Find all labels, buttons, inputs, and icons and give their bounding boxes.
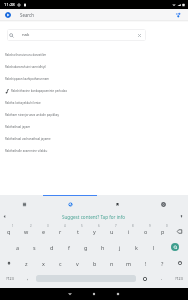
staticText: Rakthathaal jayam <box>5 125 31 129</box>
staticText: z <box>25 260 28 267</box>
staticText: nak <box>22 32 30 38</box>
button[interactable]: n <box>103 255 120 271</box>
button[interactable]: i <box>120 223 137 239</box>
button[interactable]: Rakthathaal jayam <box>0 121 188 133</box>
staticText: t <box>77 228 79 235</box>
button[interactable]: Rakshithavine kankapapaeninte perkalaa <box>0 85 188 97</box>
staticText: Rakshakaranshuini sannidhiyil <box>5 65 47 69</box>
staticText: k <box>135 244 138 251</box>
staticText: Rakshithavine kankapapaeninte perkalaa <box>11 89 67 93</box>
button[interactable]: d <box>43 239 60 255</box>
staticText: 7 <box>115 224 117 228</box>
button[interactable]: . <box>153 271 170 286</box>
button[interactable]: ?123 <box>170 271 188 286</box>
button[interactable]: l <box>145 239 162 255</box>
button[interactable]: t <box>69 223 86 239</box>
button[interactable]: App logo <box>5 12 11 18</box>
staticText: s <box>33 244 36 251</box>
button[interactable]: h <box>94 239 111 255</box>
button[interactable]: w <box>18 223 35 239</box>
staticText: 11:28 <box>4 2 15 8</box>
button[interactable]: e <box>35 223 52 239</box>
button[interactable]: r <box>52 223 69 239</box>
button[interactable] <box>171 223 188 239</box>
staticText: 5 <box>81 224 83 228</box>
button[interactable]: s <box>26 239 43 255</box>
button[interactable]: Back <box>58 288 82 300</box>
button[interactable]: ?123 <box>0 271 19 286</box>
staticText: c <box>59 260 62 267</box>
button[interactable]: Account <box>173 10 183 20</box>
button[interactable]: nak <box>7 29 146 41</box>
button[interactable]: Home <box>82 288 106 300</box>
staticText: v <box>76 260 79 267</box>
staticText: Rakthathalle avannnine vilakku <box>5 149 48 153</box>
staticText: f <box>68 244 70 251</box>
staticText: 2 <box>30 224 32 228</box>
button[interactable]: Google search <box>63 197 77 211</box>
button[interactable]: q <box>0 223 18 239</box>
button[interactable] <box>171 255 188 271</box>
button[interactable]: Emoji <box>136 271 153 286</box>
button[interactable]: Raktha kottayekkuhil eniw <box>0 97 188 109</box>
staticText: Suggest content? Tap for info <box>62 214 126 220</box>
button[interactable] <box>0 255 18 271</box>
button[interactable]: g <box>77 239 94 255</box>
staticText: 0 <box>166 224 168 228</box>
staticText: ?123 <box>175 276 183 281</box>
staticText: q <box>7 228 11 235</box>
button[interactable]: Rakshippaan kazhipatharunnam <box>0 73 188 85</box>
staticText: m <box>126 260 132 267</box>
staticText: g <box>84 244 88 251</box>
button[interactable]: Raktham niranjorueva undalin papikkay <box>0 109 188 121</box>
staticText: ?123 <box>6 276 14 281</box>
button[interactable]: ! <box>137 255 154 271</box>
button[interactable]: a <box>9 239 26 255</box>
button[interactable]: z <box>18 255 35 271</box>
staticText: i <box>128 228 130 235</box>
button[interactable]: y <box>86 223 103 239</box>
button[interactable]: j <box>111 239 128 255</box>
button[interactable]: , <box>19 271 36 286</box>
staticText: b <box>93 260 97 267</box>
button[interactable]: u <box>103 223 120 239</box>
button[interactable]: p <box>154 223 171 239</box>
button[interactable]: k <box>128 239 145 255</box>
staticText: Raktha kottayekkuhil eniw <box>5 101 41 105</box>
button[interactable]: Rakthathalle avannnine vilakku <box>0 145 188 157</box>
button[interactable]: c <box>52 255 69 271</box>
button[interactable]: Stickers <box>110 197 124 211</box>
button[interactable]: b <box>86 255 103 271</box>
staticText: 3 <box>47 224 49 228</box>
button[interactable]: x <box>35 255 52 271</box>
staticText: a <box>16 244 20 251</box>
button[interactable]: Search <box>162 239 188 255</box>
staticText: 6 <box>98 224 100 228</box>
staticText: n <box>110 260 114 267</box>
button[interactable]: Rakshakaranshuini sannidhiyil <box>0 61 188 73</box>
button[interactable]: ? <box>154 255 171 271</box>
button[interactable]: o <box>137 223 154 239</box>
button[interactable]: m <box>120 255 137 271</box>
button[interactable]: f <box>60 239 77 255</box>
button[interactable]: Recents <box>106 288 130 300</box>
staticText: Raktham niranjorueva undalin papikkay <box>5 113 59 117</box>
button[interactable]: Raksha tharuivnuru darvatilim <box>0 49 188 61</box>
button[interactable]: Clipboard <box>17 197 31 211</box>
button[interactable]: v <box>69 255 86 271</box>
staticText: d <box>50 244 54 251</box>
staticText: . <box>161 275 163 282</box>
button[interactable]: Rakthathaal vachanathaal jayame <box>0 133 188 145</box>
button[interactable]: Previous <box>1 213 8 220</box>
button[interactable]: Clear <box>135 31 144 40</box>
staticText: Rakshippaan kazhipatharunnam <box>5 77 50 81</box>
staticText: Rakthathaal vachanathaal jayame <box>5 137 51 141</box>
staticText: x <box>42 260 45 267</box>
button[interactable]: Settings <box>156 197 170 211</box>
staticText: r <box>59 228 62 235</box>
staticText: ? <box>161 260 164 267</box>
staticText: j <box>119 244 121 251</box>
button[interactable]: More <box>178 213 185 220</box>
staticText: e <box>42 228 46 235</box>
